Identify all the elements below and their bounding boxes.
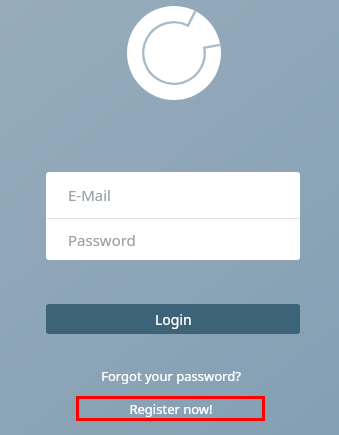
button[interactable]: Login [46, 304, 300, 334]
staticText: E-Mail [68, 185, 111, 205]
button[interactable]: Register now! [76, 396, 265, 421]
staticText: Forgot your password? [101, 367, 241, 385]
button[interactable]: Password [46, 219, 300, 260]
button[interactable]: Forgot your password? [76, 364, 265, 388]
staticText: Login [155, 310, 192, 329]
staticText: Password [68, 230, 136, 250]
staticText: Register now! [129, 400, 213, 418]
button[interactable]: E-Mail [46, 172, 300, 218]
